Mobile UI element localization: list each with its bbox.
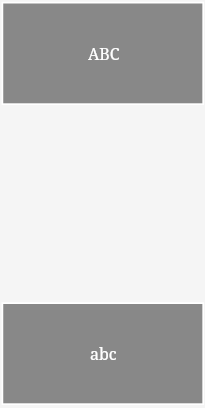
staticText: abc [90,343,117,365]
staticText: ABC [88,43,120,65]
button[interactable]: ABC [0,2,205,105]
button[interactable]: abc [0,302,205,405]
